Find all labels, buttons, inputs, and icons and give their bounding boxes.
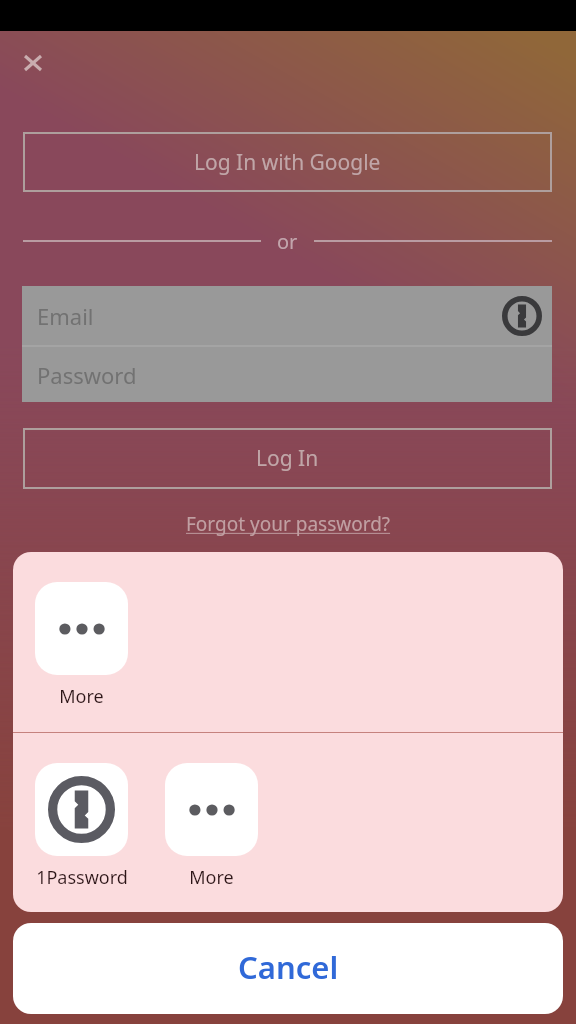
staticText: Password: [37, 360, 137, 390]
button[interactable]: Forgot your password?: [174, 505, 403, 543]
staticText: Forgot your password?: [186, 511, 391, 537]
button[interactable]: Cancel: [13, 923, 563, 1014]
staticText: More: [59, 684, 104, 709]
staticText: or: [277, 228, 298, 254]
staticText: 1Password: [36, 865, 128, 890]
button[interactable]: 1Password: [35, 763, 128, 888]
button[interactable]: Log In with Google: [23, 132, 552, 192]
button[interactable]: More: [165, 763, 258, 888]
button[interactable]: Close: [13, 43, 53, 83]
staticText: Log In with Google: [194, 148, 381, 177]
staticText: Log In: [256, 444, 319, 473]
button[interactable]: More: [35, 582, 128, 707]
staticText: Email: [37, 301, 94, 331]
button[interactable]: Fill with 1Password: [500, 294, 544, 338]
staticText: Cancel: [238, 946, 339, 988]
button[interactable]: Email: [22, 286, 552, 345]
staticText: More: [189, 865, 234, 890]
button[interactable]: Log In: [23, 428, 552, 489]
button[interactable]: Password: [22, 347, 552, 402]
